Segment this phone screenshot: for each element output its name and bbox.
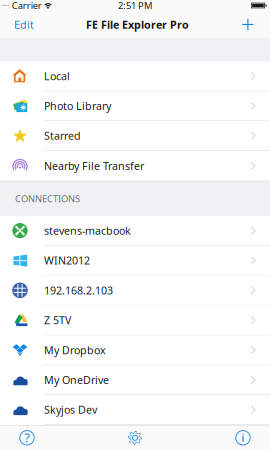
button[interactable]: Starred <box>0 121 270 151</box>
button[interactable]: Info <box>216 426 270 450</box>
staticText: 2:51 PM <box>118 0 152 12</box>
staticText: ? <box>24 430 29 446</box>
button[interactable]: stevens-macbook <box>0 216 270 246</box>
staticText: WIN2012 <box>44 253 90 268</box>
staticText: Local <box>44 69 70 83</box>
staticText: CONNECTIONS <box>15 192 80 205</box>
button[interactable]: Settings <box>108 426 162 450</box>
staticText: Photo Library <box>44 99 111 113</box>
staticText: Starred <box>44 129 81 143</box>
button[interactable]: My Dropbox <box>0 335 270 365</box>
button[interactable]: Help <box>0 426 54 450</box>
staticText: Nearby File Transfer <box>44 159 144 173</box>
staticText: FE File Explorer Pro <box>86 17 189 32</box>
staticText: My Dropbox <box>44 343 106 357</box>
button[interactable]: My OneDrive <box>0 365 270 395</box>
button[interactable]: 192.168.2.103 <box>0 276 270 306</box>
button[interactable]: Nearby File Transfer <box>0 151 270 181</box>
button[interactable]: Local <box>0 61 270 91</box>
staticText: Skyjos Dev <box>44 403 97 417</box>
button[interactable]: Z 5TV <box>0 306 270 335</box>
staticText: Carrier <box>12 0 42 12</box>
button[interactable]: Skyjos Dev <box>0 395 270 425</box>
button[interactable]: Photo Library <box>0 91 270 121</box>
staticText: My OneDrive <box>44 373 109 387</box>
staticText: stevens-macbook <box>44 223 131 238</box>
staticText: Edit <box>14 17 34 32</box>
staticText: 192.168.2.103 <box>44 283 113 297</box>
staticText: Z 5TV <box>44 313 71 327</box>
button[interactable]: WIN2012 <box>0 246 270 276</box>
button[interactable]: Edit <box>0 11 48 38</box>
button[interactable]: Add <box>232 11 270 38</box>
